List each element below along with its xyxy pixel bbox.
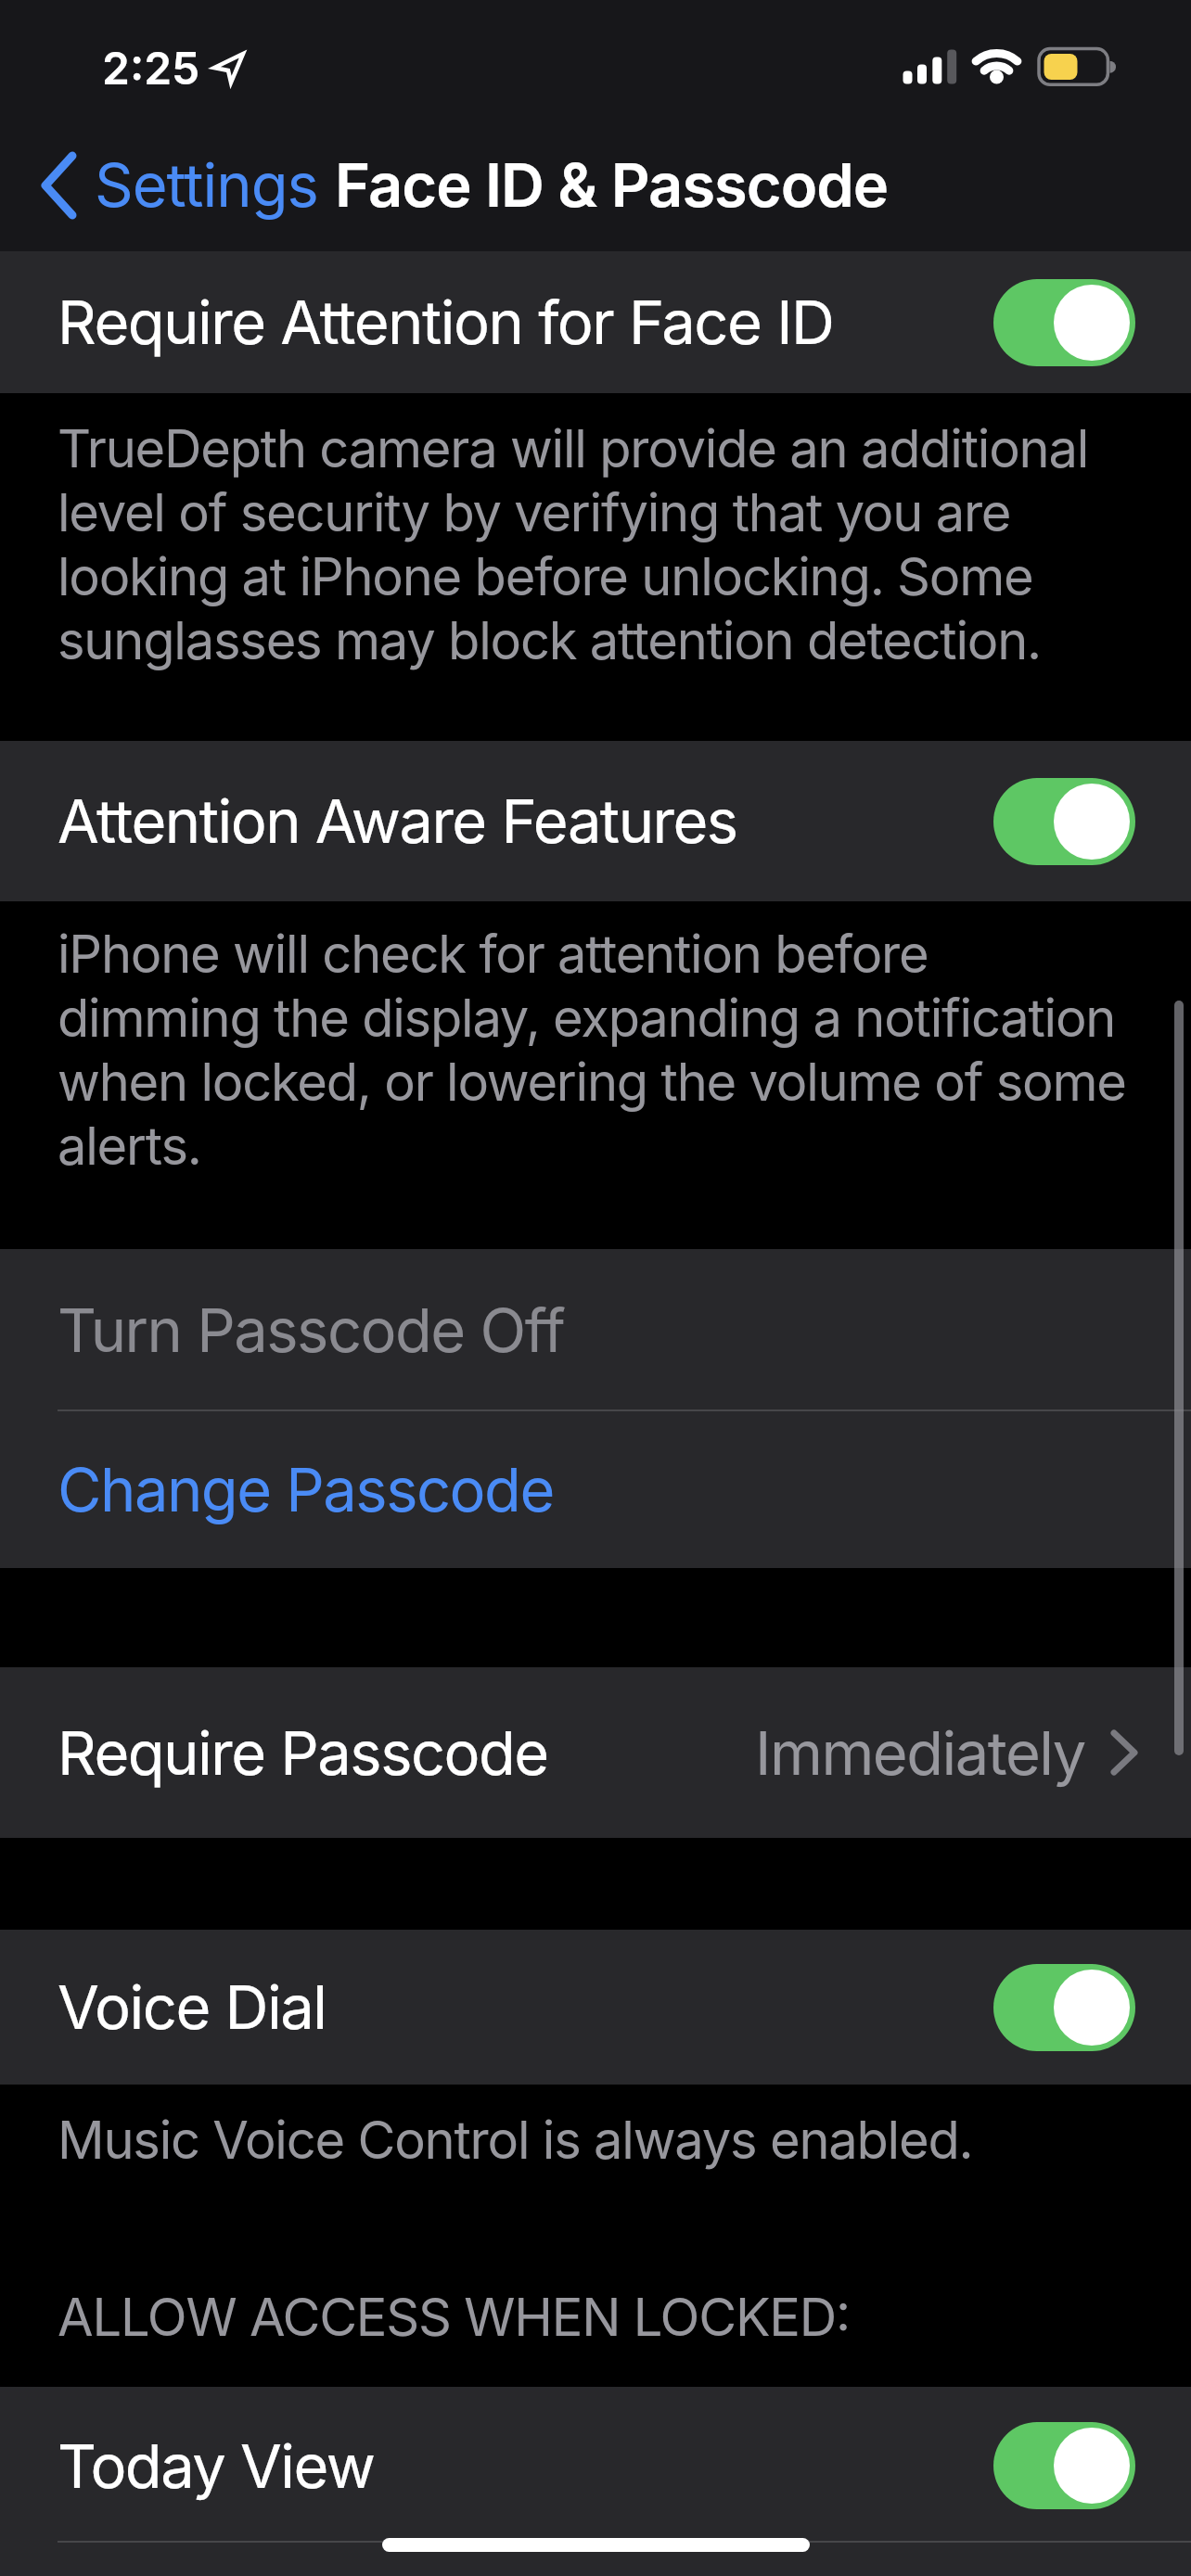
button[interactable] (993, 279, 1135, 366)
staticText: Immediately (755, 1716, 1085, 1790)
staticText: iPhone will check for attention before d… (58, 923, 1126, 1178)
staticText: Voice Dial (58, 1970, 327, 2044)
button[interactable]: Change Passcode (0, 1411, 1191, 1568)
button[interactable]: Today View (0, 2387, 1191, 2544)
button[interactable]: Settings (37, 129, 318, 241)
staticText: Require Passcode (58, 1716, 548, 1790)
staticText: Turn Passcode Off (58, 1294, 565, 1367)
staticText: Change Passcode (58, 1453, 554, 1526)
staticText: Attention Aware Features (58, 784, 737, 858)
button[interactable]: Require Passcode (0, 1667, 1191, 1838)
button[interactable] (993, 2422, 1135, 2509)
button[interactable] (993, 778, 1135, 865)
staticText: Today View (58, 2429, 375, 2503)
staticText: Music Voice Control is always enabled. (58, 2109, 973, 2172)
staticText: 2:25 (102, 41, 200, 95)
button[interactable]: Require Attention for Face ID (0, 251, 1191, 393)
staticText: TrueDepth camera will provide an additio… (58, 417, 1089, 672)
staticText: Settings (95, 148, 318, 222)
staticText: Require Attention for Face ID (58, 286, 834, 359)
staticText: ALLOW ACCESS WHEN LOCKED: (58, 2286, 850, 2349)
button[interactable] (993, 1964, 1135, 2051)
button[interactable]: Turn Passcode Off (0, 1249, 1191, 1410)
staticText: Face ID & Passcode (335, 148, 889, 222)
button[interactable]: Attention Aware Features (0, 741, 1191, 901)
button[interactable]: Voice Dial (0, 1930, 1191, 2085)
